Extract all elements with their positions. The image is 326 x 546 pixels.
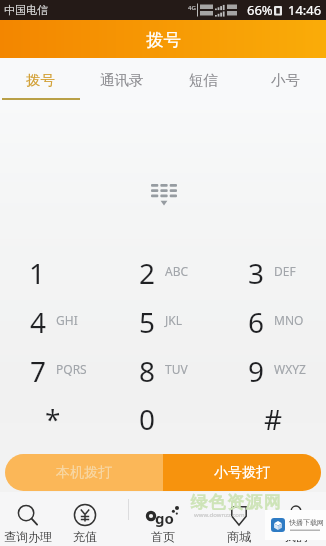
- staticText: 0: [139, 400, 156, 438]
- button[interactable]: 本机拨打: [5, 454, 163, 491]
- staticText: 本机拨打: [56, 464, 112, 482]
- staticText: 充值: [73, 529, 97, 544]
- button[interactable]: 1: [0, 248, 108, 297]
- button[interactable]: 3: [218, 248, 326, 297]
- staticText: JKL: [165, 312, 182, 328]
- button[interactable]: 小号拨打: [163, 454, 321, 491]
- staticText: 绿色资源网: [190, 492, 281, 513]
- button[interactable]: 短信: [162, 58, 244, 101]
- button[interactable]: 9: [218, 346, 326, 395]
- staticText: 拨号: [146, 29, 181, 51]
- staticText: WXYZ: [274, 361, 306, 377]
- button[interactable]: 7: [0, 346, 108, 395]
- staticText: 14:46: [288, 1, 322, 19]
- staticText: 2: [139, 254, 156, 292]
- staticText: 4: [30, 303, 47, 341]
- staticText: 商城: [227, 529, 251, 544]
- button[interactable]: 拨号: [0, 58, 81, 101]
- staticText: ABC: [165, 263, 189, 279]
- button[interactable]: 0: [109, 394, 217, 443]
- staticText: 8: [139, 352, 156, 390]
- staticText: TUV: [165, 361, 188, 377]
- staticText: #: [264, 400, 283, 438]
- staticText: *: [45, 400, 61, 438]
- button[interactable]: *: [0, 394, 108, 443]
- staticText: 9: [248, 352, 265, 390]
- button[interactable]: 查询办理: [0, 496, 60, 546]
- staticText: go: [155, 508, 174, 528]
- button[interactable]: go: [131, 496, 195, 546]
- staticText: 首页: [151, 529, 175, 544]
- staticText: 中国电信: [4, 3, 48, 17]
- staticText: 3: [248, 254, 265, 292]
- staticText: www.downzz.com: [194, 511, 245, 519]
- button[interactable]: 充值: [53, 496, 117, 546]
- button[interactable]: 6: [218, 297, 326, 346]
- staticText: 查询办理: [4, 529, 52, 544]
- button[interactable]: 2: [109, 248, 217, 297]
- button[interactable]: 8: [109, 346, 217, 395]
- staticText: 6: [248, 303, 265, 341]
- staticText: 短信: [189, 71, 218, 89]
- staticText: 快播下载网: [289, 518, 324, 527]
- button[interactable]: 5: [109, 297, 217, 346]
- button[interactable]: 商城: [207, 496, 271, 546]
- button[interactable]: 4: [0, 297, 108, 346]
- staticText: 66%: [247, 1, 273, 19]
- staticText: PQRS: [56, 361, 87, 377]
- staticText: 5: [139, 303, 156, 341]
- staticText: MNO: [274, 312, 304, 328]
- button[interactable]: #: [218, 394, 326, 443]
- staticText: 拨号: [26, 71, 55, 89]
- staticText: 1: [29, 254, 46, 292]
- staticText: 小号拨打: [214, 464, 270, 482]
- staticText: 通讯录: [100, 71, 144, 89]
- button[interactable]: 通讯录: [81, 58, 162, 101]
- staticText: DEF: [274, 263, 296, 279]
- staticText: 4G: [188, 4, 196, 12]
- staticText: 小号: [271, 71, 300, 89]
- staticText: GHI: [56, 312, 78, 328]
- staticText: 7: [30, 352, 47, 390]
- staticText: 我的: [284, 529, 308, 544]
- button[interactable]: 我的: [264, 496, 326, 546]
- button[interactable]: 小号: [244, 58, 326, 101]
